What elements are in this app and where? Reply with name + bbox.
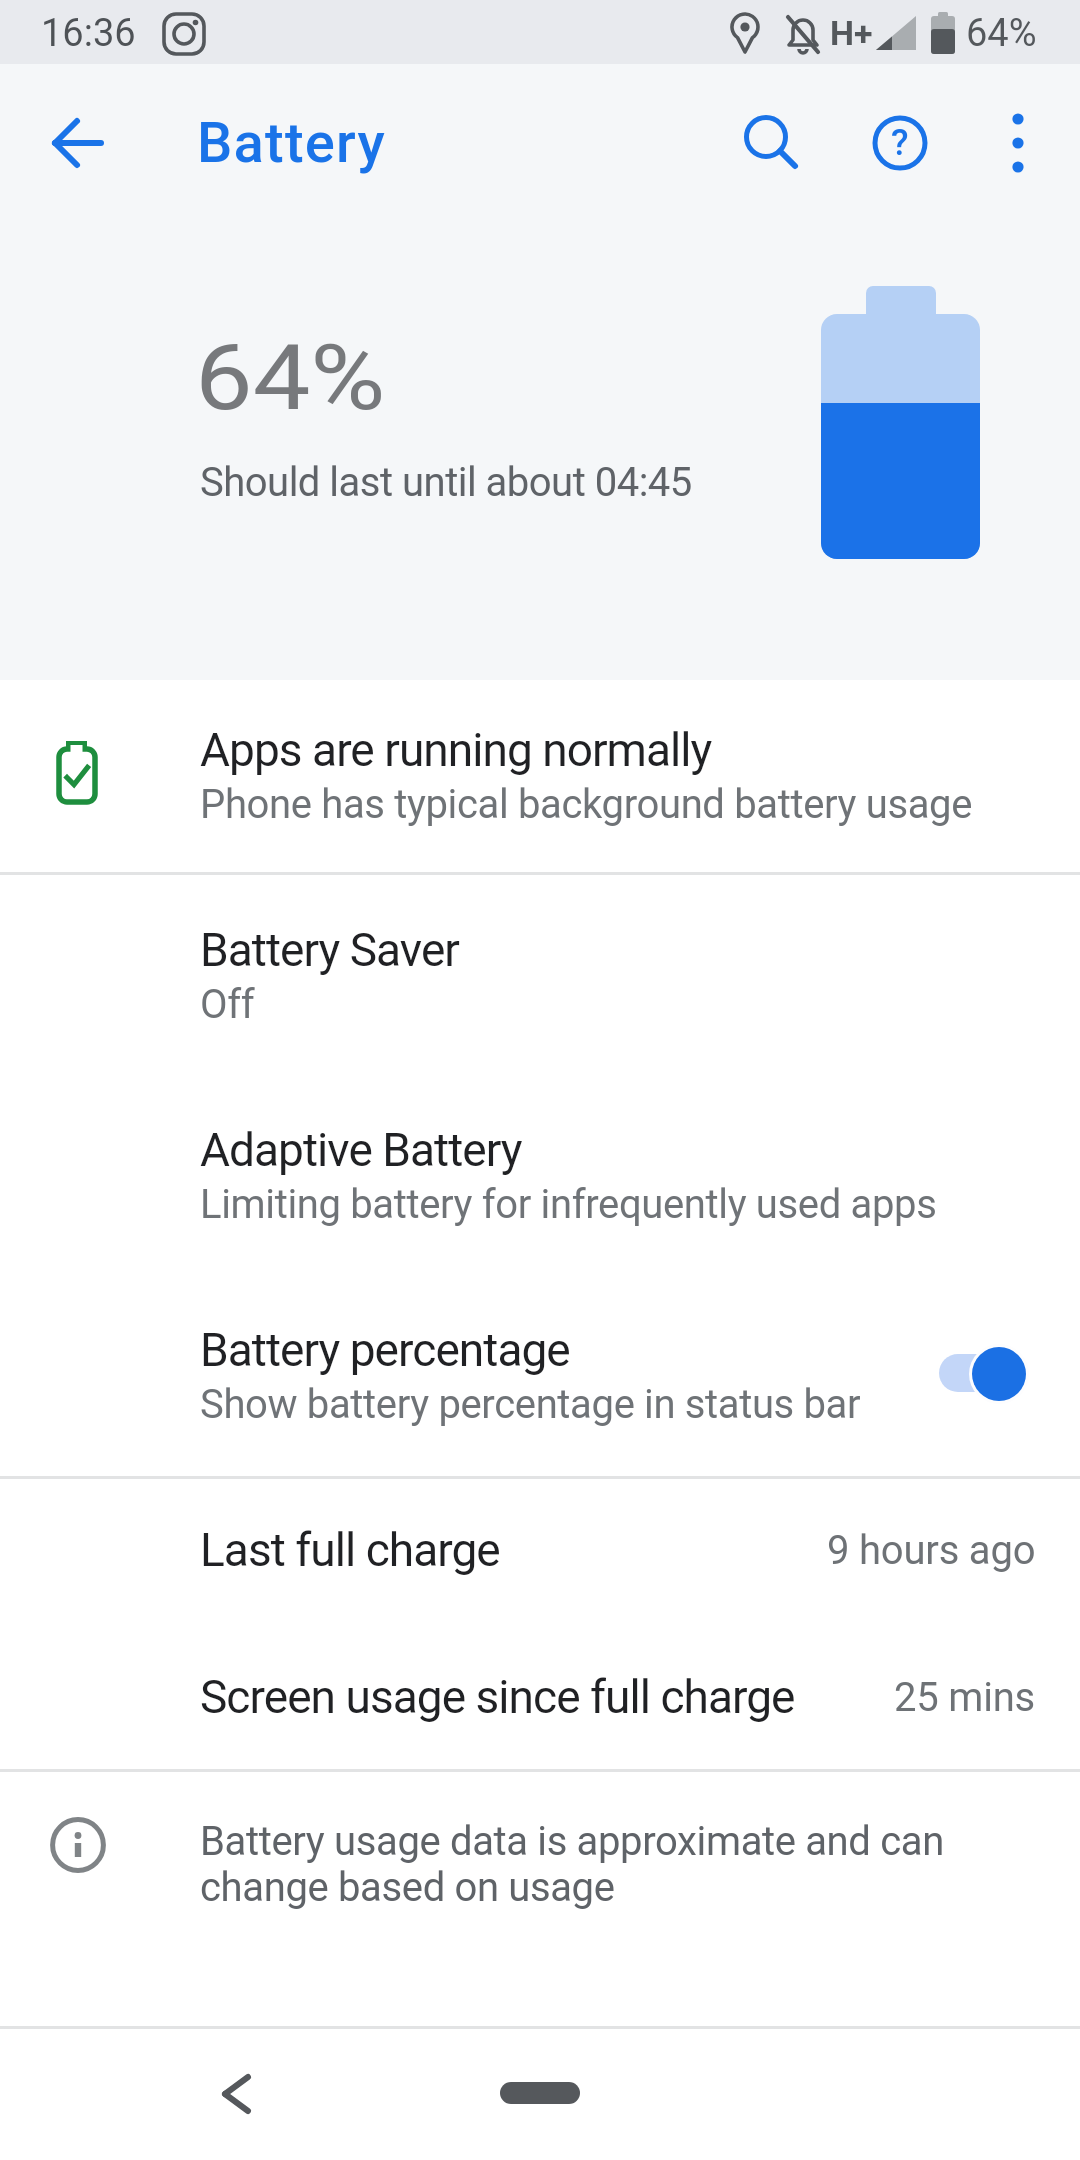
button[interactable] — [972, 1347, 1026, 1401]
button[interactable] — [40, 105, 116, 181]
button[interactable] — [994, 107, 1042, 179]
button[interactable] — [0, 680, 1080, 872]
button[interactable] — [0, 1478, 1080, 1624]
staticText: Screen usage since full charge — [200, 1670, 795, 1724]
staticText: 64% — [195, 326, 386, 431]
staticText: H+ — [830, 13, 873, 53]
staticText: Battery usage data is approximate and ca… — [200, 1818, 944, 1865]
staticText: change based on usage — [200, 1864, 615, 1911]
staticText: Apps are running normally — [200, 723, 712, 777]
staticText: Should last until about 04:45 — [200, 459, 692, 506]
staticText: Battery Saver — [200, 923, 459, 977]
staticText: Adaptive Battery — [200, 1123, 522, 1177]
staticText: 9 hours ago — [827, 1527, 1036, 1574]
button[interactable] — [0, 1274, 1080, 1476]
staticText: Phone has typical background battery usa… — [200, 781, 973, 828]
button[interactable] — [0, 874, 1080, 1074]
staticText: Last full charge — [200, 1523, 500, 1577]
button[interactable] — [0, 1074, 1080, 1274]
button[interactable] — [737, 110, 803, 176]
button[interactable] — [500, 2082, 580, 2104]
staticText: Off — [200, 981, 255, 1028]
staticText: 16:36 — [41, 11, 136, 56]
staticText: Limiting battery for infrequently used a… — [200, 1181, 937, 1228]
button[interactable] — [203, 2059, 271, 2127]
staticText: 64% — [966, 11, 1037, 56]
staticText: ? — [891, 122, 909, 164]
button[interactable]: ? — [867, 110, 933, 176]
staticText: Battery — [197, 110, 386, 176]
staticText: 25 mins — [894, 1674, 1036, 1721]
staticText: Show battery percentage in status bar — [200, 1381, 861, 1428]
button[interactable] — [0, 1624, 1080, 1769]
staticText: Battery percentage — [200, 1323, 570, 1377]
